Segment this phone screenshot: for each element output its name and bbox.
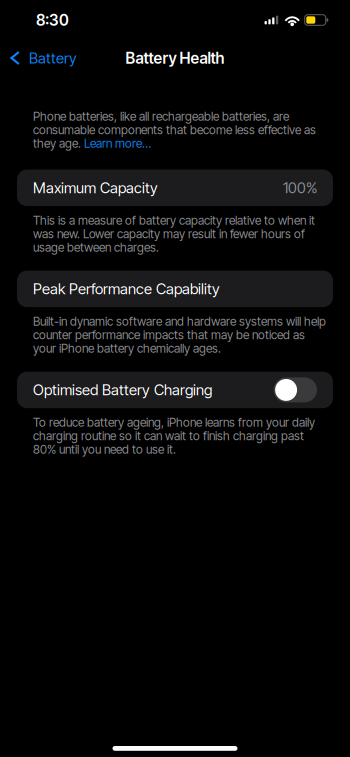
staticText: Battery [29, 49, 77, 67]
staticText: Peak Performance Capability [33, 280, 220, 298]
staticText: Optimised Battery Charging [33, 381, 212, 399]
button[interactable]: Peak Performance Capability [0, 271, 350, 307]
button[interactable]: Maximum Capacity [0, 170, 350, 206]
staticText: Phone batteries, like all rechargeable b… [33, 109, 316, 151]
staticText: Built-in dynamic software and hardware s… [33, 314, 326, 356]
staticText: Maximum Capacity [33, 179, 158, 197]
button[interactable]: Battery [0, 42, 83, 74]
staticText: This is a measure of battery capacity re… [33, 213, 315, 255]
staticText: To reduce battery ageing, iPhone learns … [33, 415, 315, 457]
button[interactable]: Optimised Battery Charging [0, 372, 350, 408]
staticText: Battery Health [125, 49, 224, 67]
staticText: 100% [283, 179, 317, 197]
staticText: 8:30 [36, 11, 69, 29]
